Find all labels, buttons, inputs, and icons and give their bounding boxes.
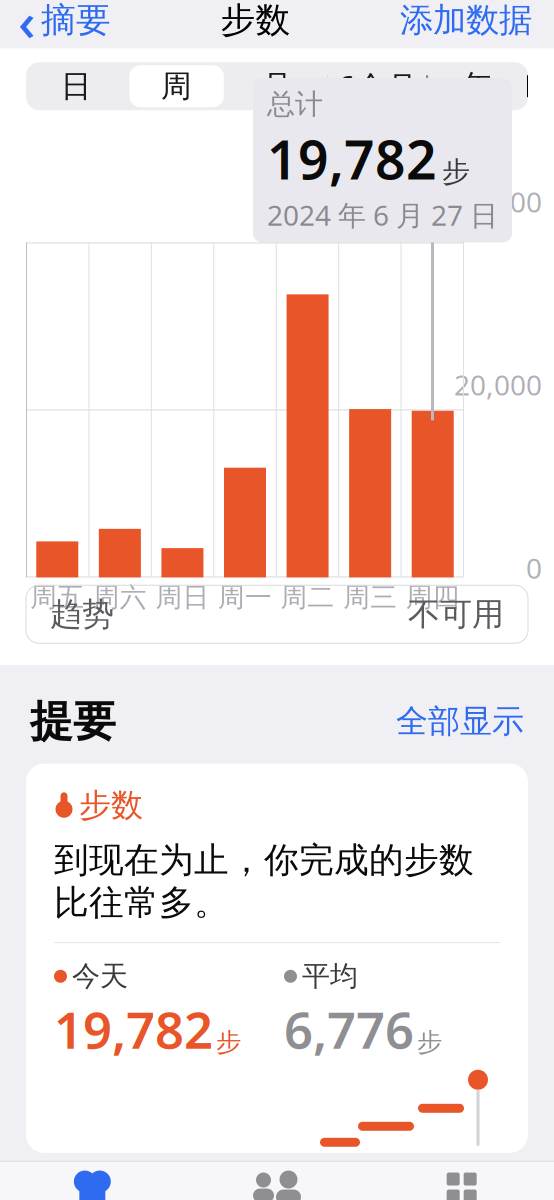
button[interactable]: 年 xyxy=(428,62,528,110)
staticText: 步数 xyxy=(220,0,290,41)
staticText: 月 xyxy=(261,67,292,105)
staticText: 周三 xyxy=(343,581,397,614)
staticText: ‹ xyxy=(18,0,35,56)
staticText: 今天 xyxy=(72,959,128,993)
staticText: 步 xyxy=(417,1027,442,1058)
staticText: 平均 xyxy=(302,959,358,993)
button[interactable]: 浏览 xyxy=(369,1160,554,1200)
staticText: 不可用 xyxy=(408,595,504,634)
staticText: 周 xyxy=(161,67,192,105)
staticText: 6个月 xyxy=(337,66,417,107)
button[interactable]: 趋势 xyxy=(26,585,528,643)
staticText: 周二 xyxy=(281,581,335,614)
staticText: 日 xyxy=(61,67,92,105)
staticText: 摘要 xyxy=(41,0,111,41)
staticText: 步 xyxy=(442,155,470,189)
staticText: 年 xyxy=(462,67,493,105)
staticText: 40,000 xyxy=(454,183,542,220)
staticText: 全部显示 xyxy=(396,702,524,741)
staticText: 提要 xyxy=(30,695,116,748)
staticText: 添加数据 xyxy=(400,0,532,41)
button[interactable]: 周 xyxy=(126,62,227,110)
button[interactable]: ‹ xyxy=(0,0,111,62)
button[interactable]: 全部显示 xyxy=(396,702,524,741)
staticText: 周四 xyxy=(406,581,460,614)
staticText: 周一 xyxy=(218,581,272,614)
button[interactable]: 摘要 xyxy=(0,1160,185,1200)
staticText: 19,782 xyxy=(267,123,437,194)
staticText: 0 xyxy=(526,549,542,586)
staticText: 总计 xyxy=(267,87,323,121)
staticText: 2024 年 6 月 27 日 xyxy=(267,196,498,233)
staticText: 周五 xyxy=(30,581,84,614)
staticText: 20,000 xyxy=(454,366,542,403)
staticText: 步 xyxy=(216,1027,241,1058)
staticText: 19,782 xyxy=(54,995,213,1063)
button[interactable]: 月 xyxy=(227,62,327,110)
staticText: 周日 xyxy=(155,581,209,614)
staticText: 周六 xyxy=(93,581,147,614)
button[interactable]: 日 xyxy=(26,62,126,110)
staticText: 步数 xyxy=(79,786,143,825)
staticText: 到现在为止，你完成的步数比往常多。 xyxy=(54,839,474,924)
button[interactable]: 6个月 xyxy=(327,62,428,110)
button[interactable]: 共享 xyxy=(185,1160,369,1200)
staticText: 6,776 xyxy=(284,995,414,1063)
staticText: 趋势 xyxy=(50,595,114,634)
button[interactable]: 添加数据 xyxy=(400,0,554,47)
